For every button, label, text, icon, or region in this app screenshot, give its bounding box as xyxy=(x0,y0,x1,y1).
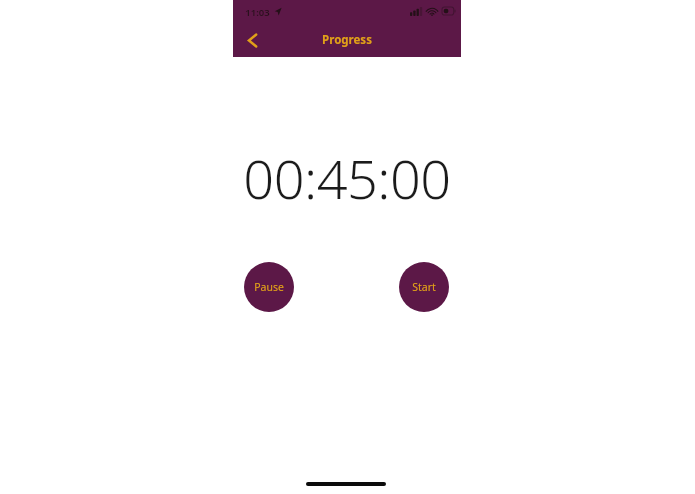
button[interactable]: Back xyxy=(237,26,267,54)
button[interactable]: Pause xyxy=(244,262,294,312)
staticText: Start xyxy=(412,280,436,294)
button[interactable]: Start xyxy=(399,262,449,312)
staticText: Progress xyxy=(322,32,372,48)
staticText: 00:45:00 xyxy=(243,141,451,205)
staticText: 11:03 xyxy=(245,6,270,19)
staticText: Pause xyxy=(254,280,284,294)
